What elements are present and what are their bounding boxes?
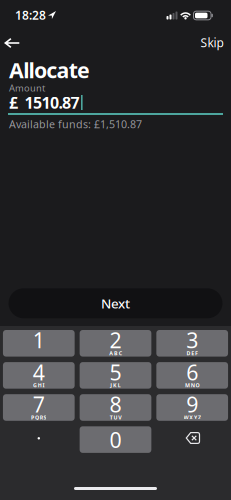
- staticText: 6: [186, 358, 198, 386]
- staticText: 4: [33, 358, 45, 386]
- staticText: TUV: [110, 414, 121, 421]
- staticText: ABC: [109, 350, 122, 357]
- staticText: GHI: [33, 382, 45, 389]
- button[interactable]: 9: [156, 394, 228, 421]
- button[interactable]: 6: [156, 362, 228, 389]
- staticText: Next: [101, 294, 130, 312]
- button[interactable]: Delete: [183, 430, 203, 446]
- staticText: 8: [109, 390, 121, 418]
- button[interactable]: 4: [3, 362, 75, 389]
- button[interactable]: 3: [156, 330, 228, 357]
- button[interactable]: 5: [80, 362, 151, 389]
- staticText: Allocate: [9, 56, 90, 84]
- staticText: MNO: [185, 382, 199, 389]
- button[interactable]: 8: [80, 394, 151, 421]
- staticText: 18:28: [15, 7, 46, 23]
- staticText: 7: [33, 390, 45, 418]
- staticText: 3: [186, 326, 198, 354]
- staticText: 1: [33, 326, 45, 354]
- staticText: 5: [109, 358, 121, 386]
- staticText: DEF: [186, 350, 198, 357]
- staticText: PQRS: [31, 414, 46, 421]
- button[interactable]: 0: [80, 426, 151, 453]
- staticText: JKL: [110, 382, 121, 389]
- button[interactable]: 2: [80, 330, 151, 357]
- staticText: Available funds: £1,510.87: [9, 117, 142, 131]
- button[interactable]: 7: [3, 394, 75, 421]
- staticText: £ 1510.87: [9, 92, 79, 113]
- staticText: Skip: [200, 34, 223, 50]
- button[interactable]: 1: [3, 330, 75, 357]
- staticText: 2: [109, 326, 121, 354]
- button[interactable]: Next: [8, 288, 222, 318]
- button[interactable]: Decimal point: [3, 426, 75, 453]
- staticText: Amount: [9, 82, 45, 94]
- staticText: 9: [186, 390, 198, 418]
- button[interactable]: Skip: [200, 34, 223, 50]
- staticText: WXYZ: [183, 414, 201, 421]
- staticText: 0: [109, 425, 121, 454]
- button[interactable]: Back: [0, 33, 25, 53]
